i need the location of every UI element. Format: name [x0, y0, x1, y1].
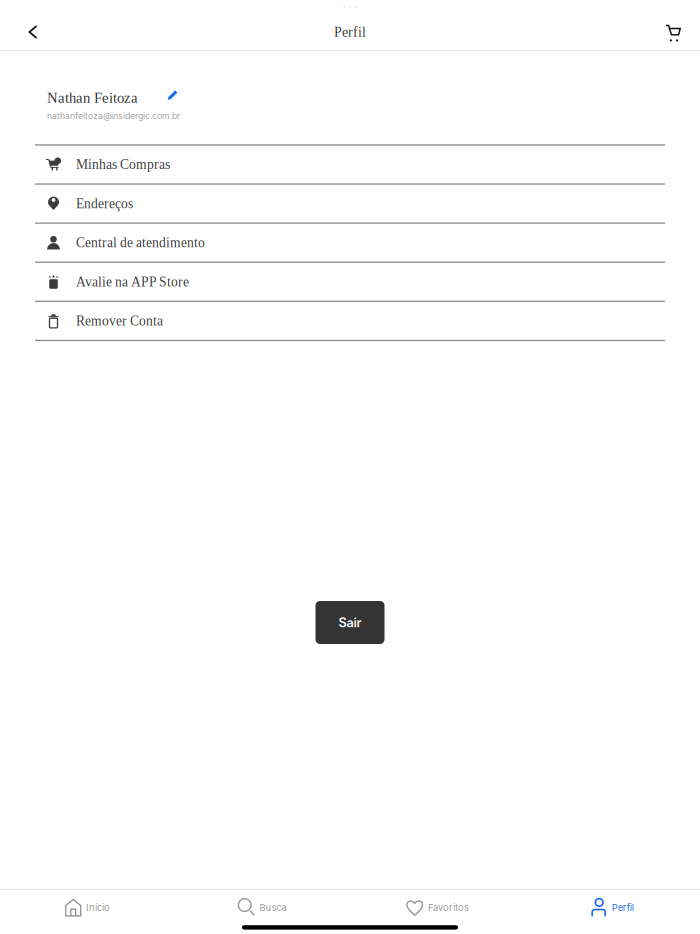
- button[interactable]: Cart: [655, 14, 691, 50]
- button[interactable]: Endereços: [35, 185, 665, 224]
- button[interactable]: Edit profile: [138, 89, 207, 106]
- button[interactable]: Back: [15, 14, 51, 50]
- button[interactable]: Perfil: [525, 890, 700, 925]
- staticText: Minhas Compras: [76, 157, 170, 172]
- button[interactable]: Central de atendimento: [35, 224, 665, 263]
- staticText: Nathan Feitoza: [47, 90, 138, 106]
- button[interactable]: Minhas Compras: [35, 146, 665, 185]
- button[interactable]: Início: [0, 890, 175, 925]
- staticText: Perfil: [612, 902, 634, 913]
- staticText: Remover Conta: [76, 313, 163, 328]
- button[interactable]: Avalie na APP Store: [35, 263, 665, 302]
- staticText: Favoritos: [428, 902, 469, 913]
- staticText: Início: [86, 902, 110, 913]
- staticText: Perfil: [334, 24, 366, 40]
- button[interactable]: Sair: [315, 601, 384, 644]
- staticText: Central de atendimento: [76, 235, 205, 250]
- staticText: Sair: [338, 615, 361, 630]
- staticText: nathanfeitoza@insidergic.com.br: [47, 111, 180, 121]
- button[interactable]: Favoritos: [350, 890, 525, 925]
- button[interactable]: Remover Conta: [35, 302, 665, 341]
- staticText: Endereços: [76, 196, 133, 211]
- staticText: Busca: [260, 902, 287, 913]
- staticText: Avalie na APP Store: [76, 274, 189, 289]
- button[interactable]: Busca: [175, 890, 350, 925]
